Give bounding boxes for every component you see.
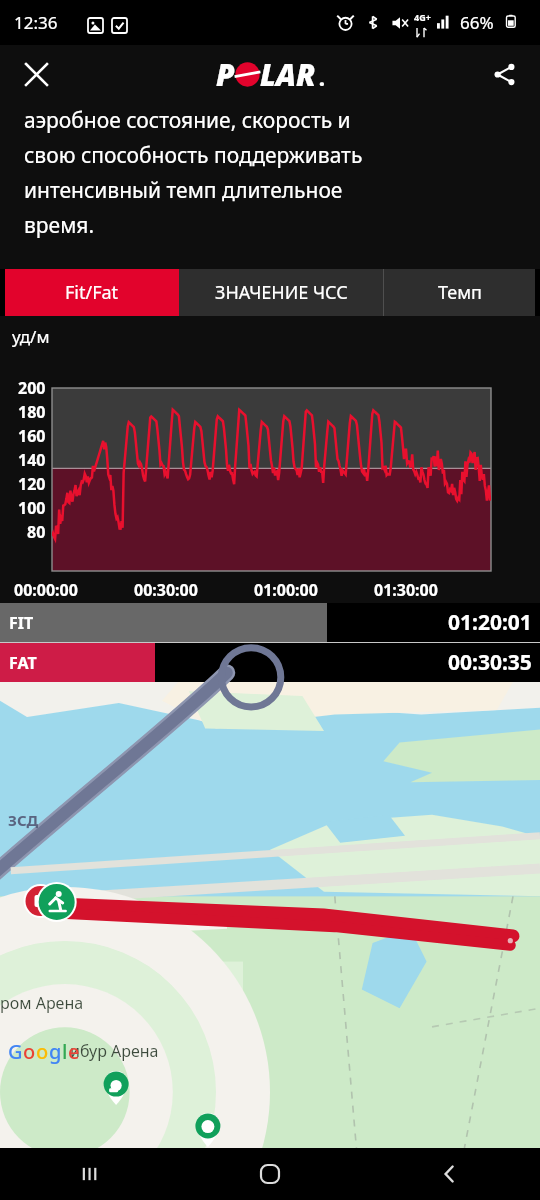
staticText: 12:36	[14, 11, 58, 34]
staticText: свою способность поддерживать	[24, 141, 363, 170]
staticText: P	[216, 54, 235, 95]
button[interactable]: FIT	[0, 603, 540, 642]
staticText: время.	[24, 211, 95, 240]
staticText: ЗСД	[8, 810, 39, 830]
staticText: аэробное состояние, скорость и	[24, 106, 351, 135]
staticText: Темп	[438, 280, 482, 305]
staticText: FIT	[9, 612, 34, 634]
staticText: 100	[18, 497, 46, 519]
staticText: g	[49, 1038, 62, 1065]
staticText: ром Арена	[0, 992, 84, 1014]
staticText: 4G+	[414, 11, 431, 23]
button[interactable]: Back	[360, 1148, 540, 1200]
button[interactable]: Share	[481, 51, 527, 97]
staticText: 01:30:00	[374, 579, 438, 601]
button[interactable]: Темп	[384, 269, 535, 316]
button[interactable]: FAT	[0, 643, 540, 682]
staticText: 140	[18, 449, 46, 471]
staticText: o	[36, 1038, 49, 1065]
staticText: 80	[27, 521, 46, 543]
staticText: LAR	[260, 54, 316, 95]
staticText: 01:00:00	[254, 579, 318, 601]
button[interactable]: Recents	[0, 1148, 180, 1200]
staticText: G	[8, 1038, 23, 1065]
staticText: .	[319, 65, 325, 92]
staticText: FAT	[9, 652, 37, 674]
staticText: ибур Арена	[70, 1040, 159, 1062]
staticText: ЗНАЧЕНИЕ ЧСС	[215, 280, 348, 305]
button[interactable]: ЗНАЧЕНИЕ ЧСС	[179, 269, 383, 316]
staticText: 00:00:00	[14, 579, 78, 601]
staticText: 120	[18, 473, 46, 495]
staticText: o	[23, 1038, 36, 1065]
staticText: l	[62, 1038, 68, 1065]
staticText: e	[68, 1038, 80, 1065]
staticText: 180	[18, 401, 46, 423]
button[interactable]: Home	[180, 1148, 360, 1200]
button[interactable]: Close	[13, 51, 59, 97]
staticText: 66%	[460, 11, 494, 34]
staticText: 00:30:35	[448, 648, 532, 677]
button[interactable]: Fit/Fat	[5, 269, 179, 316]
staticText: Fit/Fat	[65, 280, 119, 305]
staticText: 200	[18, 377, 46, 399]
button[interactable]: ЗСД	[0, 682, 540, 1148]
staticText: уд/м	[12, 325, 50, 348]
staticText: 00:30:00	[134, 579, 198, 601]
staticText: 01:20:01	[448, 608, 532, 637]
staticText: 160	[18, 425, 46, 447]
staticText: интенсивный темп длительное	[24, 176, 343, 205]
